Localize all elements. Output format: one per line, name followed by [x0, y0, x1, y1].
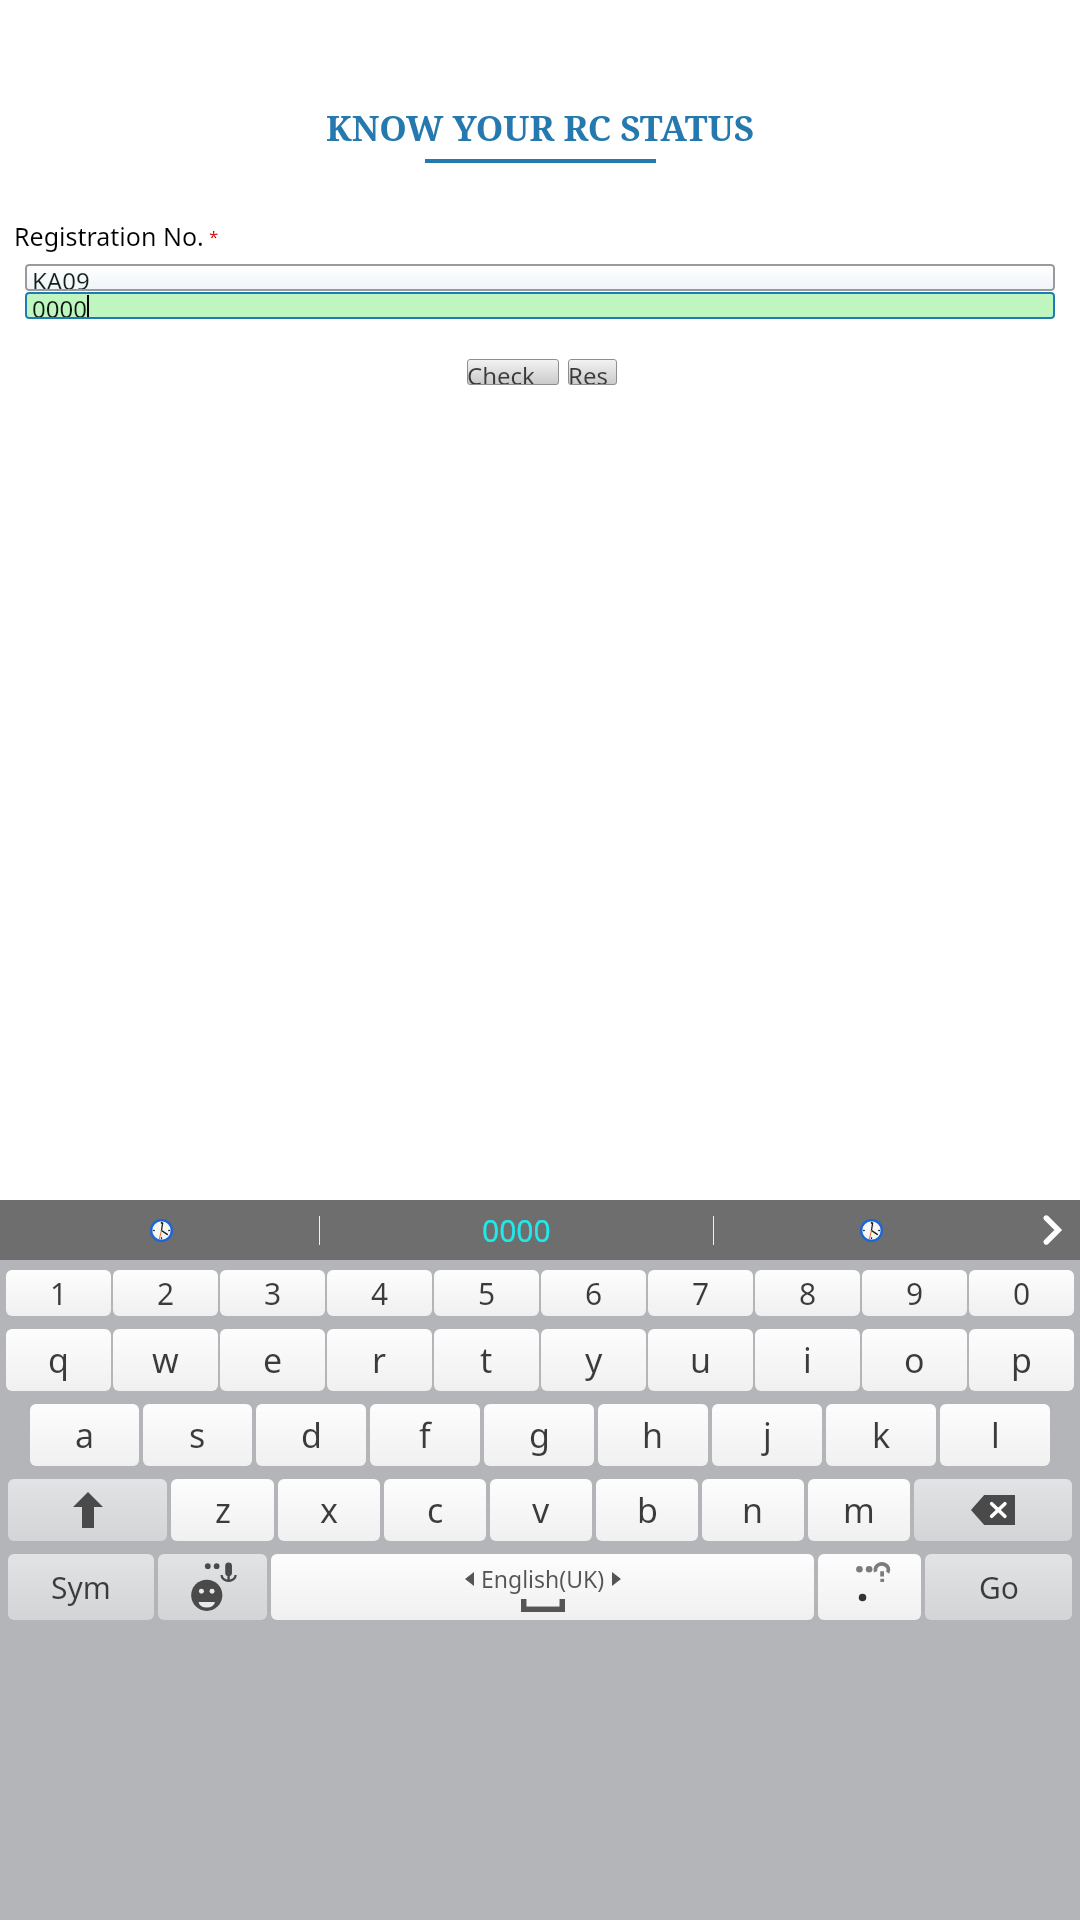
staticText: 5 — [478, 1273, 496, 1314]
staticText: o — [904, 1337, 925, 1383]
staticText: l — [991, 1412, 1000, 1458]
staticText: j — [763, 1412, 772, 1458]
button[interactable]: g — [484, 1404, 594, 1466]
staticText: KNOW YOUR RC STATUS — [326, 104, 755, 152]
button[interactable]: f — [370, 1404, 480, 1466]
button[interactable]: t — [434, 1329, 539, 1391]
staticText: e — [263, 1337, 283, 1383]
staticText: KA09 — [32, 264, 90, 291]
staticText: 2 — [157, 1273, 175, 1314]
staticText: p — [1011, 1337, 1032, 1383]
staticText: m — [843, 1487, 875, 1533]
staticText: 7 — [692, 1273, 710, 1314]
button[interactable]: 1 — [6, 1270, 111, 1316]
button[interactable]: 3 — [220, 1270, 325, 1316]
staticText: Sym — [51, 1567, 111, 1608]
staticText: Reset — [568, 359, 617, 385]
staticText: i — [803, 1337, 812, 1383]
staticText: r — [372, 1337, 387, 1383]
staticText: 3 — [264, 1273, 282, 1314]
staticText: g — [529, 1412, 550, 1458]
staticText: t — [480, 1337, 493, 1383]
button[interactable]: English(UK) — [271, 1554, 814, 1620]
button[interactable]: l — [940, 1404, 1050, 1466]
staticText: 1 — [50, 1273, 68, 1314]
button[interactable]: Shift — [8, 1479, 167, 1541]
staticText: f — [419, 1412, 431, 1458]
button[interactable]: 7 — [648, 1270, 753, 1316]
button[interactable]: More suggestions — [1028, 1200, 1076, 1260]
button[interactable]: 4 — [327, 1270, 432, 1316]
button[interactable]: Check RC Status — [467, 359, 559, 385]
button[interactable]: s — [143, 1404, 252, 1466]
staticText: z — [215, 1487, 231, 1533]
button[interactable]: KA09 — [25, 264, 1055, 291]
staticText: English(UK) — [481, 1563, 605, 1594]
staticText: y — [585, 1337, 603, 1383]
button[interactable]: 9 — [862, 1270, 967, 1316]
button[interactable] — [4, 1200, 319, 1260]
button[interactable]: p — [969, 1329, 1074, 1391]
button[interactable]: j — [712, 1404, 822, 1466]
staticText: * — [209, 225, 219, 248]
button[interactable]: 6 — [541, 1270, 646, 1316]
staticText: 0000 — [32, 292, 87, 319]
staticText: 6 — [585, 1273, 603, 1314]
button[interactable]: i — [755, 1329, 860, 1391]
button[interactable]: y — [541, 1329, 646, 1391]
button[interactable]: q — [6, 1329, 111, 1391]
button[interactable]: z — [171, 1479, 274, 1541]
button[interactable] — [714, 1200, 1028, 1260]
button[interactable]: o — [862, 1329, 967, 1391]
button[interactable]: 0 — [969, 1270, 1074, 1316]
staticText: 4 — [371, 1273, 389, 1314]
staticText: x — [320, 1487, 338, 1533]
button[interactable]: Go — [925, 1554, 1072, 1620]
button[interactable]: n — [702, 1479, 804, 1541]
staticText: Registration No. — [14, 219, 204, 253]
button[interactable]: x — [278, 1479, 380, 1541]
staticText: Check RC Status — [467, 359, 559, 385]
staticText: c — [427, 1487, 444, 1533]
staticText: 0 — [1013, 1273, 1031, 1314]
button[interactable]: Sym — [8, 1554, 154, 1620]
button[interactable]: 0000 — [320, 1200, 713, 1260]
staticText: b — [637, 1487, 658, 1533]
button[interactable]: k — [826, 1404, 936, 1466]
button[interactable]: r — [327, 1329, 432, 1391]
button[interactable]: a — [30, 1404, 139, 1466]
button[interactable]: 5 — [434, 1270, 539, 1316]
button[interactable]: 8 — [755, 1270, 860, 1316]
staticText: k — [872, 1412, 891, 1458]
staticText: s — [189, 1412, 206, 1458]
button[interactable]: h — [598, 1404, 708, 1466]
button[interactable]: d — [256, 1404, 366, 1466]
staticText: 0000 — [482, 1210, 551, 1251]
button[interactable]: Reset — [568, 359, 617, 385]
staticText: a — [75, 1412, 95, 1458]
staticText: d — [301, 1412, 322, 1458]
button[interactable]: e — [220, 1329, 325, 1391]
staticText: w — [152, 1337, 179, 1383]
staticText: n — [742, 1487, 764, 1533]
staticText: h — [642, 1412, 664, 1458]
button[interactable]: b — [596, 1479, 698, 1541]
button[interactable]: Emoji and voice input — [158, 1554, 267, 1620]
button[interactable]: c — [384, 1479, 486, 1541]
button[interactable]: v — [490, 1479, 592, 1541]
staticText: v — [532, 1487, 550, 1533]
staticText: u — [690, 1337, 712, 1383]
staticText: q — [48, 1337, 69, 1383]
button[interactable]: w — [113, 1329, 218, 1391]
staticText: 9 — [906, 1273, 924, 1314]
button[interactable]: 2 — [113, 1270, 218, 1316]
button[interactable]: m — [808, 1479, 910, 1541]
staticText: Go — [979, 1567, 1019, 1608]
staticText: 8 — [799, 1273, 817, 1314]
button[interactable]: 0000 — [25, 292, 1055, 319]
button[interactable]: u — [648, 1329, 753, 1391]
button[interactable]: Backspace — [914, 1479, 1072, 1541]
button[interactable]: Punctuation — [818, 1554, 921, 1620]
